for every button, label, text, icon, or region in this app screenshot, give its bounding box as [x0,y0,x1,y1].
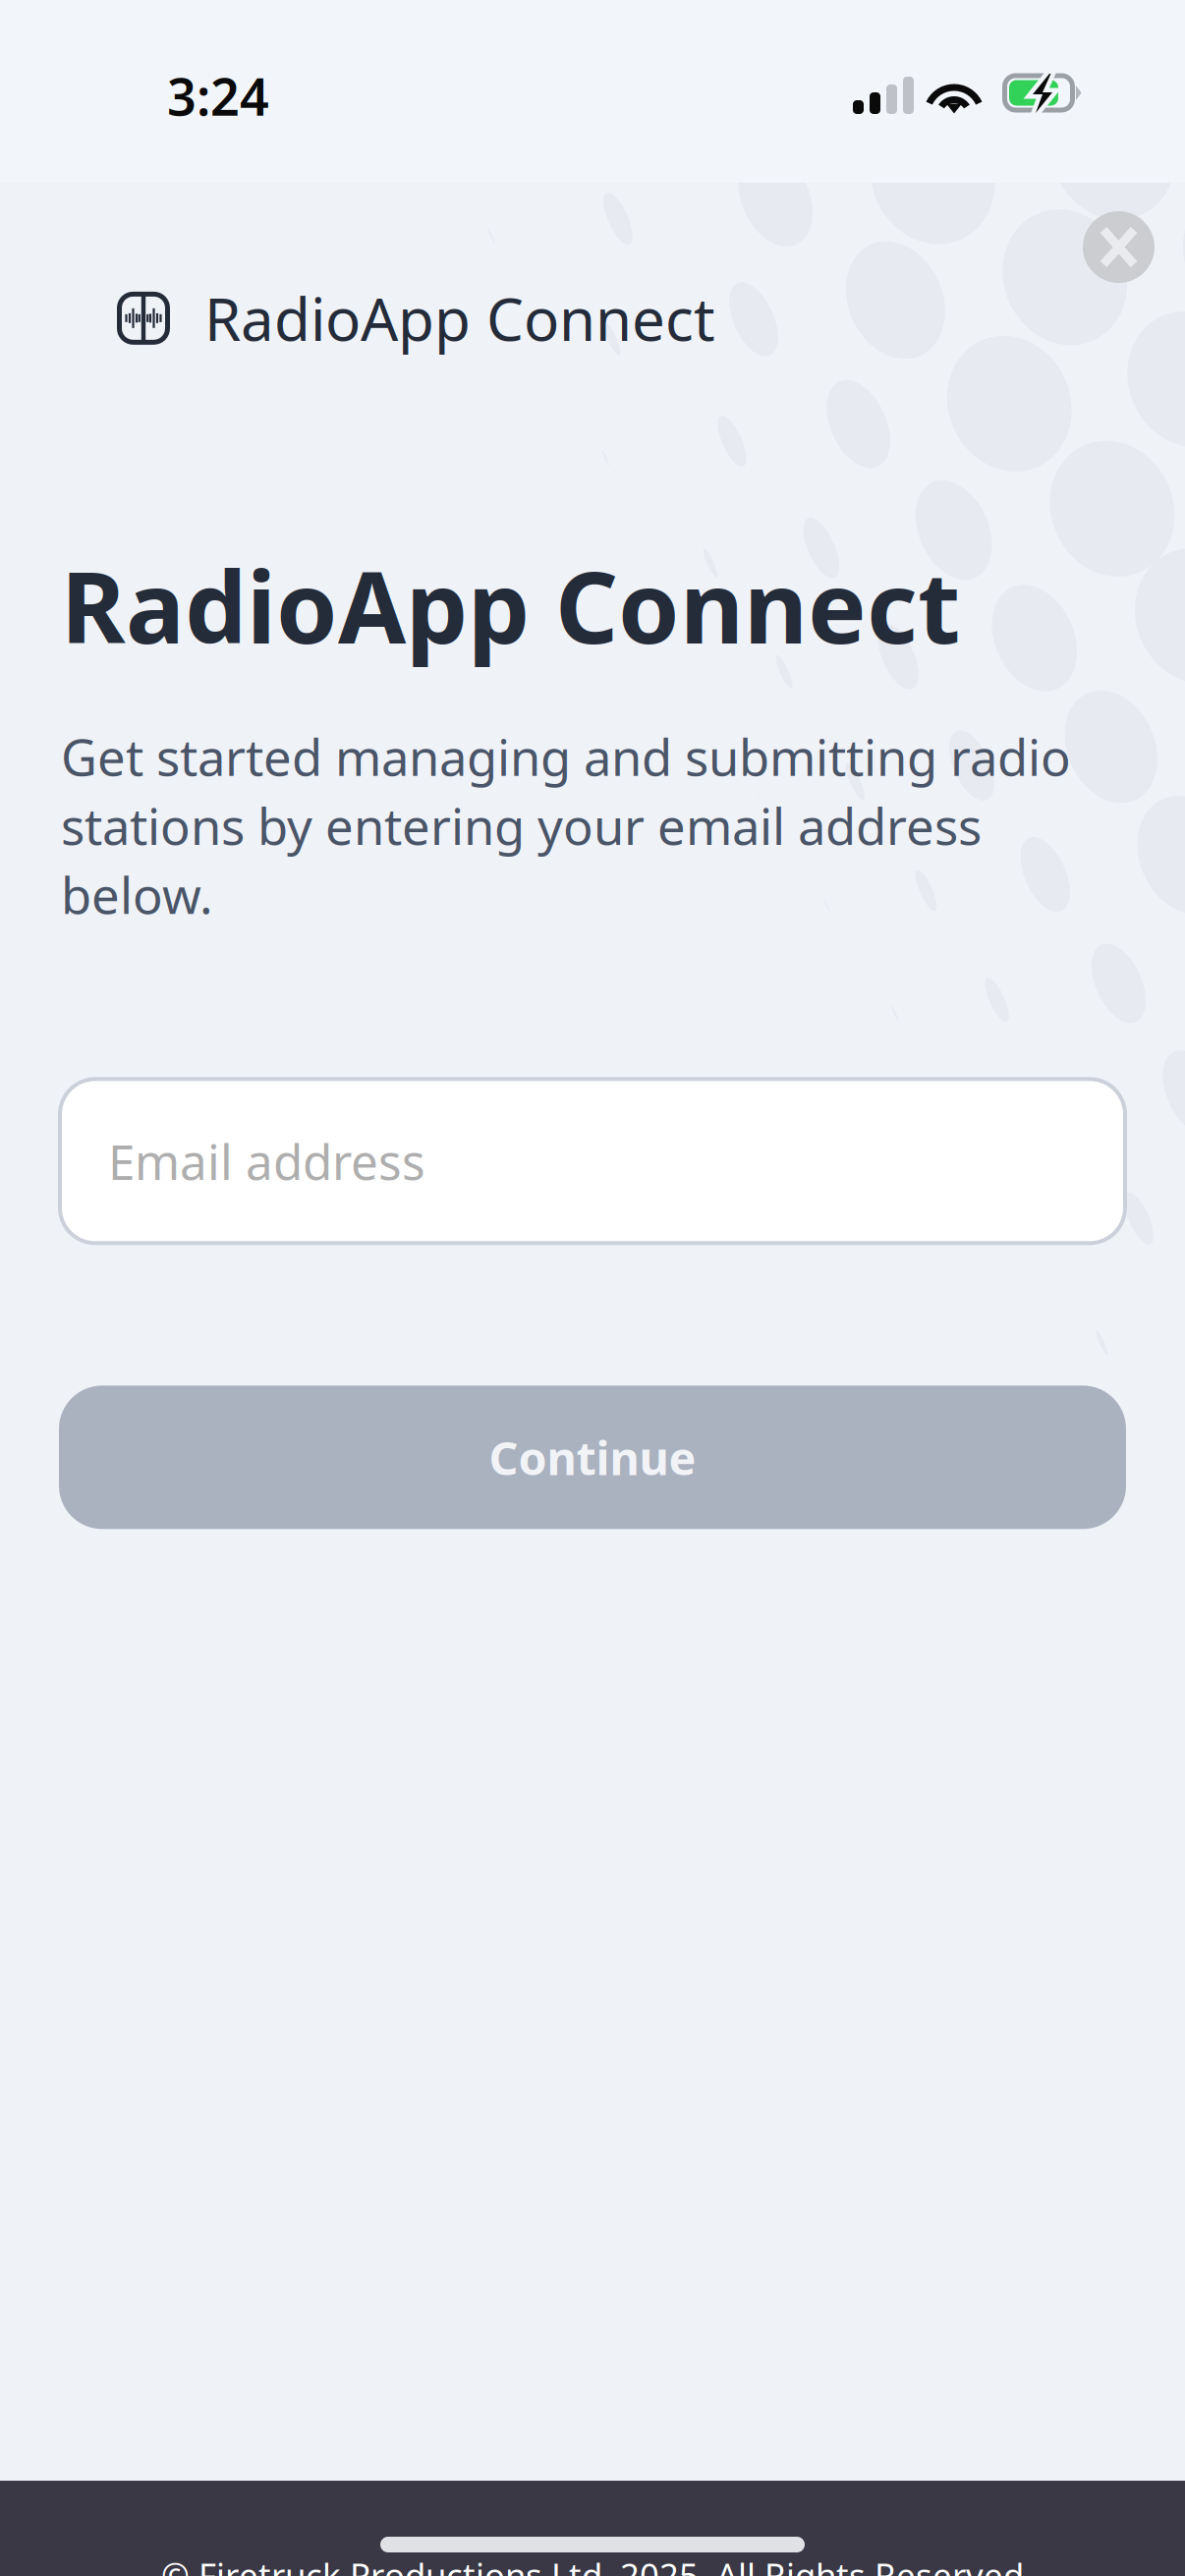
staticText: 3:24 [167,62,269,130]
staticText: Email address [108,1129,425,1193]
staticText: © Firetruck Productions Ltd. 2025. All R… [161,2552,1024,2576]
staticText: RadioApp Connect [204,279,715,357]
button[interactable]: Close [1083,211,1155,283]
staticText: RadioApp Connect [61,540,960,671]
button[interactable]: Continue [59,1386,1126,1529]
staticText: Continue [489,1427,696,1488]
staticText: Get started managing and submitting radi… [61,724,1071,928]
